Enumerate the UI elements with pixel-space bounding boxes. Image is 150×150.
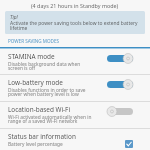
staticText: Location-based Wi-Fi (8, 105, 71, 114)
button[interactable]: Status bar information checkbox (125, 140, 133, 148)
staticText: Wi-Fi activated automatically when in ra… (8, 114, 92, 125)
staticText: Status bar information (8, 132, 76, 141)
staticText: STAMINA mode (8, 52, 55, 61)
staticText: Tip! (10, 15, 18, 20)
button[interactable]: Status bar information (0, 129, 150, 150)
button[interactable]: Low-battery mode (0, 75, 150, 101)
button[interactable]: STAMINA mode (0, 49, 150, 75)
staticText: Activate the power saving tools below to… (10, 20, 138, 31)
staticText: Disables functions in order to save powe… (8, 87, 86, 98)
staticText: Low-battery mode (8, 78, 63, 87)
button[interactable]: Toggle on (107, 79, 133, 90)
staticText: Disables background data when screen is … (8, 61, 81, 72)
staticText: POWER SAVING MODES (8, 39, 60, 44)
button[interactable]: Location-based Wi-Fi (0, 102, 150, 128)
button[interactable]: Toggle off (107, 106, 133, 117)
button[interactable]: Toggle on (107, 53, 133, 64)
staticText: Battery level percentage (8, 141, 63, 148)
staticText: (4 days 21 hours in Standby mode) (31, 3, 119, 9)
